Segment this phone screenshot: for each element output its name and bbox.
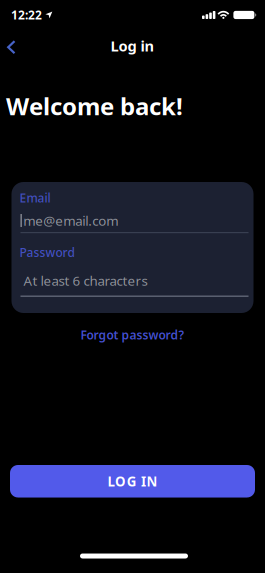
- staticText: me@email.com: [23, 212, 118, 229]
- staticText: LOG IN: [107, 472, 157, 490]
- button[interactable]: Email: [20, 213, 248, 233]
- staticText: Email: [19, 190, 50, 206]
- button[interactable]: LOG IN: [10, 465, 255, 497]
- button[interactable]: Back: [1, 35, 22, 59]
- staticText: 12:22: [11, 7, 42, 23]
- staticText: Password: [19, 244, 74, 260]
- staticText: Welcome back!: [6, 90, 183, 122]
- staticText: Log in: [110, 36, 154, 55]
- staticText: At least 6 characters: [23, 272, 147, 289]
- button[interactable]: Forgot password?: [72, 322, 192, 348]
- button[interactable]: Password: [20, 272, 248, 296]
- staticText: Forgot password?: [80, 327, 184, 343]
